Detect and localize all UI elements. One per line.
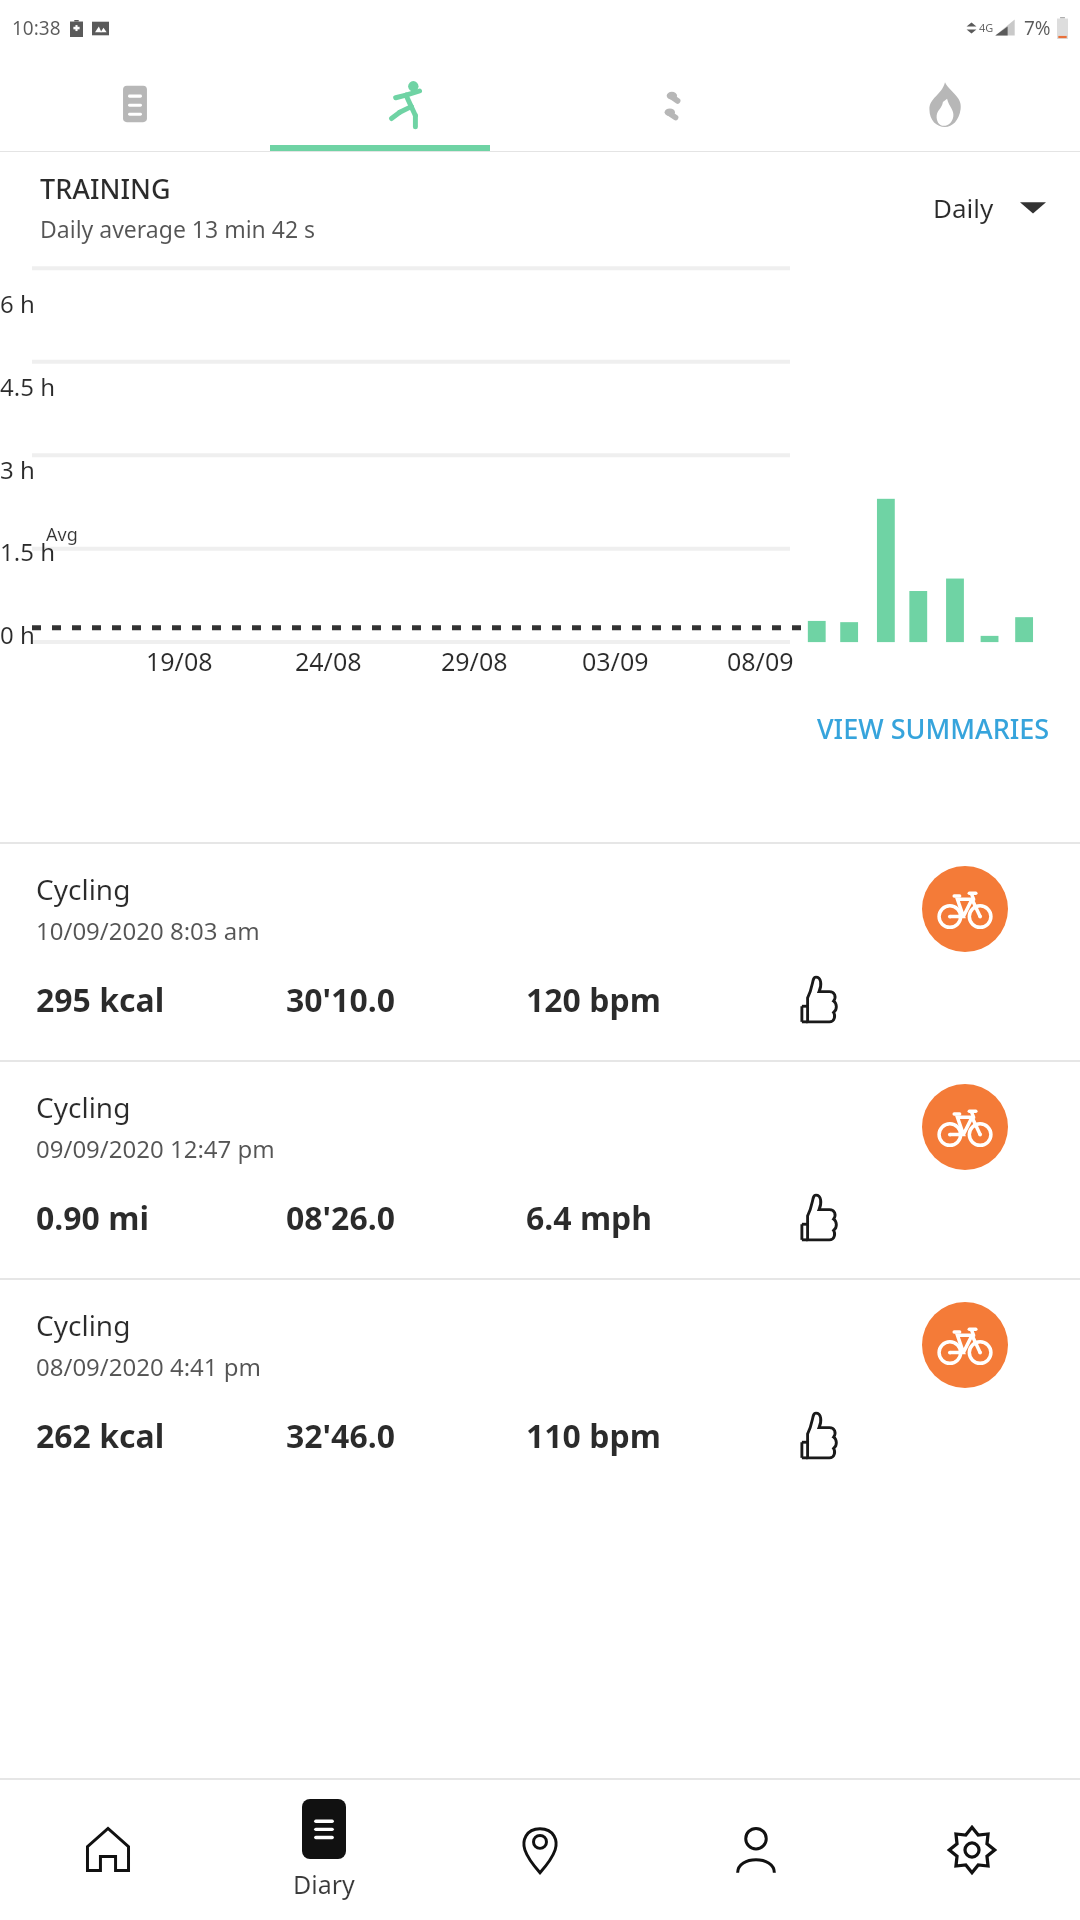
button[interactable]: Like bbox=[786, 1404, 850, 1468]
button[interactable]: Cycling bbox=[0, 1280, 1080, 1496]
staticText: 24/08 bbox=[295, 644, 362, 678]
staticText: 10/09/2020 8:03 am bbox=[36, 914, 260, 947]
button[interactable]: Places bbox=[432, 1780, 648, 1920]
staticText: 10:38 bbox=[12, 15, 61, 41]
button[interactable]: VIEW SUMMARIES bbox=[817, 710, 1050, 747]
button[interactable]: Home bbox=[0, 1780, 216, 1920]
staticText: 295 kcal bbox=[36, 978, 165, 1022]
staticText: Daily bbox=[933, 190, 994, 225]
staticText: 6.4 mph bbox=[526, 1196, 653, 1240]
staticText: 03/09 bbox=[582, 644, 649, 678]
staticText: 0 h bbox=[0, 618, 35, 651]
staticText: Cycling bbox=[36, 1088, 131, 1126]
button[interactable]: Like bbox=[786, 1186, 850, 1250]
staticText: 6 h bbox=[0, 287, 35, 320]
staticText: 4.5 h bbox=[0, 370, 55, 403]
staticText: 08/09 bbox=[727, 644, 794, 678]
staticText: 29/08 bbox=[441, 644, 508, 678]
staticText: Cycling bbox=[36, 1306, 131, 1344]
staticText: 4G bbox=[979, 20, 994, 35]
button[interactable]: Settings bbox=[864, 1780, 1080, 1920]
staticText: 262 kcal bbox=[36, 1414, 165, 1458]
button[interactable]: Like bbox=[786, 968, 850, 1032]
button[interactable]: Diary tab bbox=[0, 56, 270, 151]
staticText: 08'26.0 bbox=[286, 1196, 396, 1240]
staticText: 09/09/2020 12:47 pm bbox=[36, 1132, 275, 1165]
button[interactable]: Daily bbox=[933, 190, 1052, 225]
button[interactable]: Training tab bbox=[270, 56, 540, 151]
staticText: 7% bbox=[1024, 15, 1051, 41]
staticText: Avg bbox=[46, 522, 78, 547]
staticText: 110 bpm bbox=[526, 1414, 661, 1458]
staticText: Daily average 13 min 42 s bbox=[40, 213, 316, 244]
button[interactable]: Calories tab bbox=[810, 56, 1080, 151]
staticText: 30'10.0 bbox=[286, 978, 396, 1022]
staticText: 1.5 h bbox=[0, 535, 55, 568]
button[interactable]: Steps tab bbox=[540, 56, 810, 151]
staticText: 32'46.0 bbox=[286, 1414, 396, 1458]
button[interactable]: Diary bbox=[216, 1780, 432, 1920]
staticText: TRAINING bbox=[40, 170, 171, 207]
staticText: 120 bpm bbox=[526, 978, 661, 1022]
staticText: Diary bbox=[293, 1867, 355, 1901]
staticText: 08/09/2020 4:41 pm bbox=[36, 1350, 261, 1383]
staticText: 19/08 bbox=[146, 644, 213, 678]
button[interactable]: Cycling bbox=[0, 844, 1080, 1060]
staticText: VIEW SUMMARIES bbox=[817, 710, 1050, 747]
button[interactable]: Cycling bbox=[0, 1062, 1080, 1278]
button[interactable]: Profile bbox=[648, 1780, 864, 1920]
staticText: Cycling bbox=[36, 870, 131, 908]
staticText: 3 h bbox=[0, 453, 35, 486]
staticText: 0.90 mi bbox=[36, 1196, 149, 1240]
